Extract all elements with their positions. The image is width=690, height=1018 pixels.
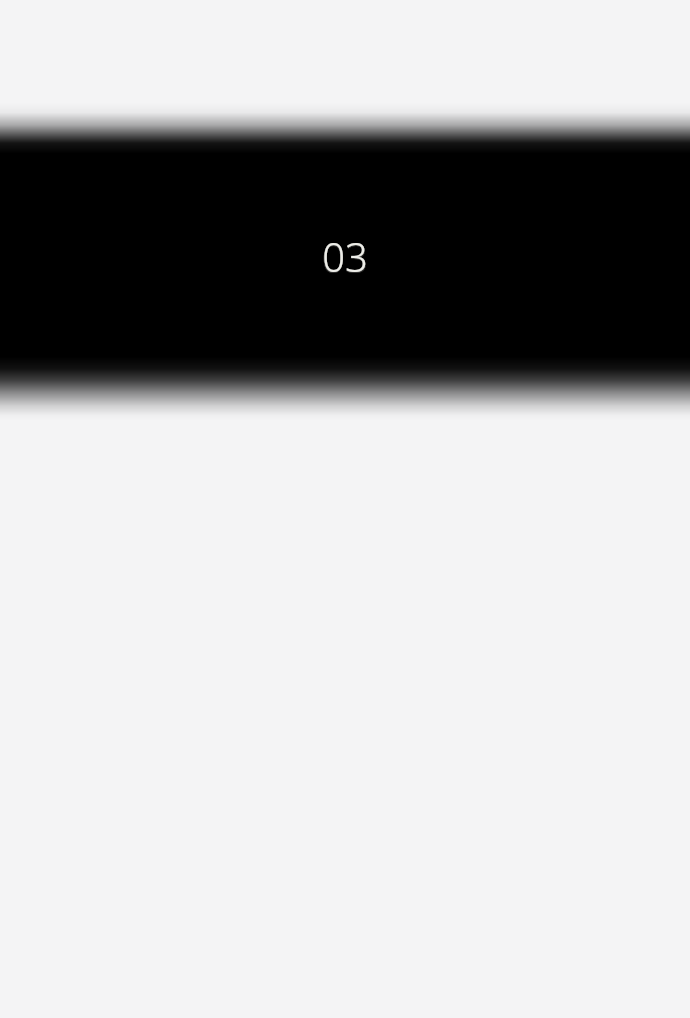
staticText: 03 bbox=[0, 229, 690, 285]
button[interactable]: Chapter 03 bbox=[0, 103, 690, 420]
staticText: 03 bbox=[0, 229, 690, 283]
